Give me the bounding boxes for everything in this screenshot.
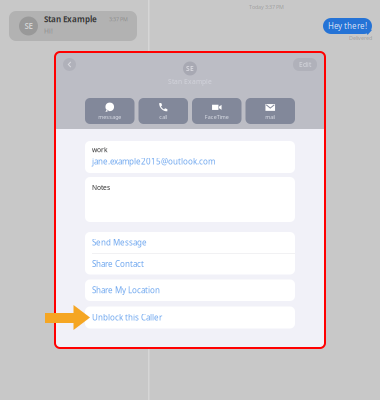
staticText: Edit <box>299 60 311 69</box>
button[interactable]: FaceTime <box>192 98 241 124</box>
staticText: Notes <box>92 183 110 192</box>
staticText: Unblock this Caller <box>92 312 162 323</box>
staticText: Today 3:37 PM <box>249 3 284 11</box>
staticText: Stan Example <box>168 77 212 86</box>
staticText: jane.example2015@outlook.com <box>92 156 215 167</box>
button[interactable]: mail <box>245 98 295 124</box>
button[interactable]: Share My Location <box>85 279 295 301</box>
button[interactable]: message <box>85 98 134 124</box>
staticText: Share My Location <box>92 285 160 295</box>
staticText: work <box>92 145 108 154</box>
staticText: Share Contact <box>92 259 144 269</box>
button[interactable]: Unblock this Caller <box>85 306 295 328</box>
staticText: Hey there! <box>328 21 367 31</box>
button[interactable]: call <box>138 98 188 124</box>
staticText: Send Message <box>92 237 147 248</box>
button[interactable]: Edit <box>293 58 317 71</box>
staticText: FaceTime <box>205 113 229 121</box>
staticText: mail <box>265 113 275 121</box>
staticText: 3:37 PM <box>109 15 128 23</box>
staticText: call <box>159 113 167 121</box>
staticText: message <box>98 113 121 121</box>
staticText: Stan Example <box>44 14 97 24</box>
button[interactable]: Back <box>63 58 76 71</box>
button[interactable]: Share Contact <box>85 253 295 274</box>
button[interactable]: Send Message <box>85 232 295 253</box>
staticText: Hi! <box>44 26 53 35</box>
staticText: SE <box>186 64 194 73</box>
staticText: SE <box>24 21 32 31</box>
staticText: Delivered <box>349 34 372 42</box>
